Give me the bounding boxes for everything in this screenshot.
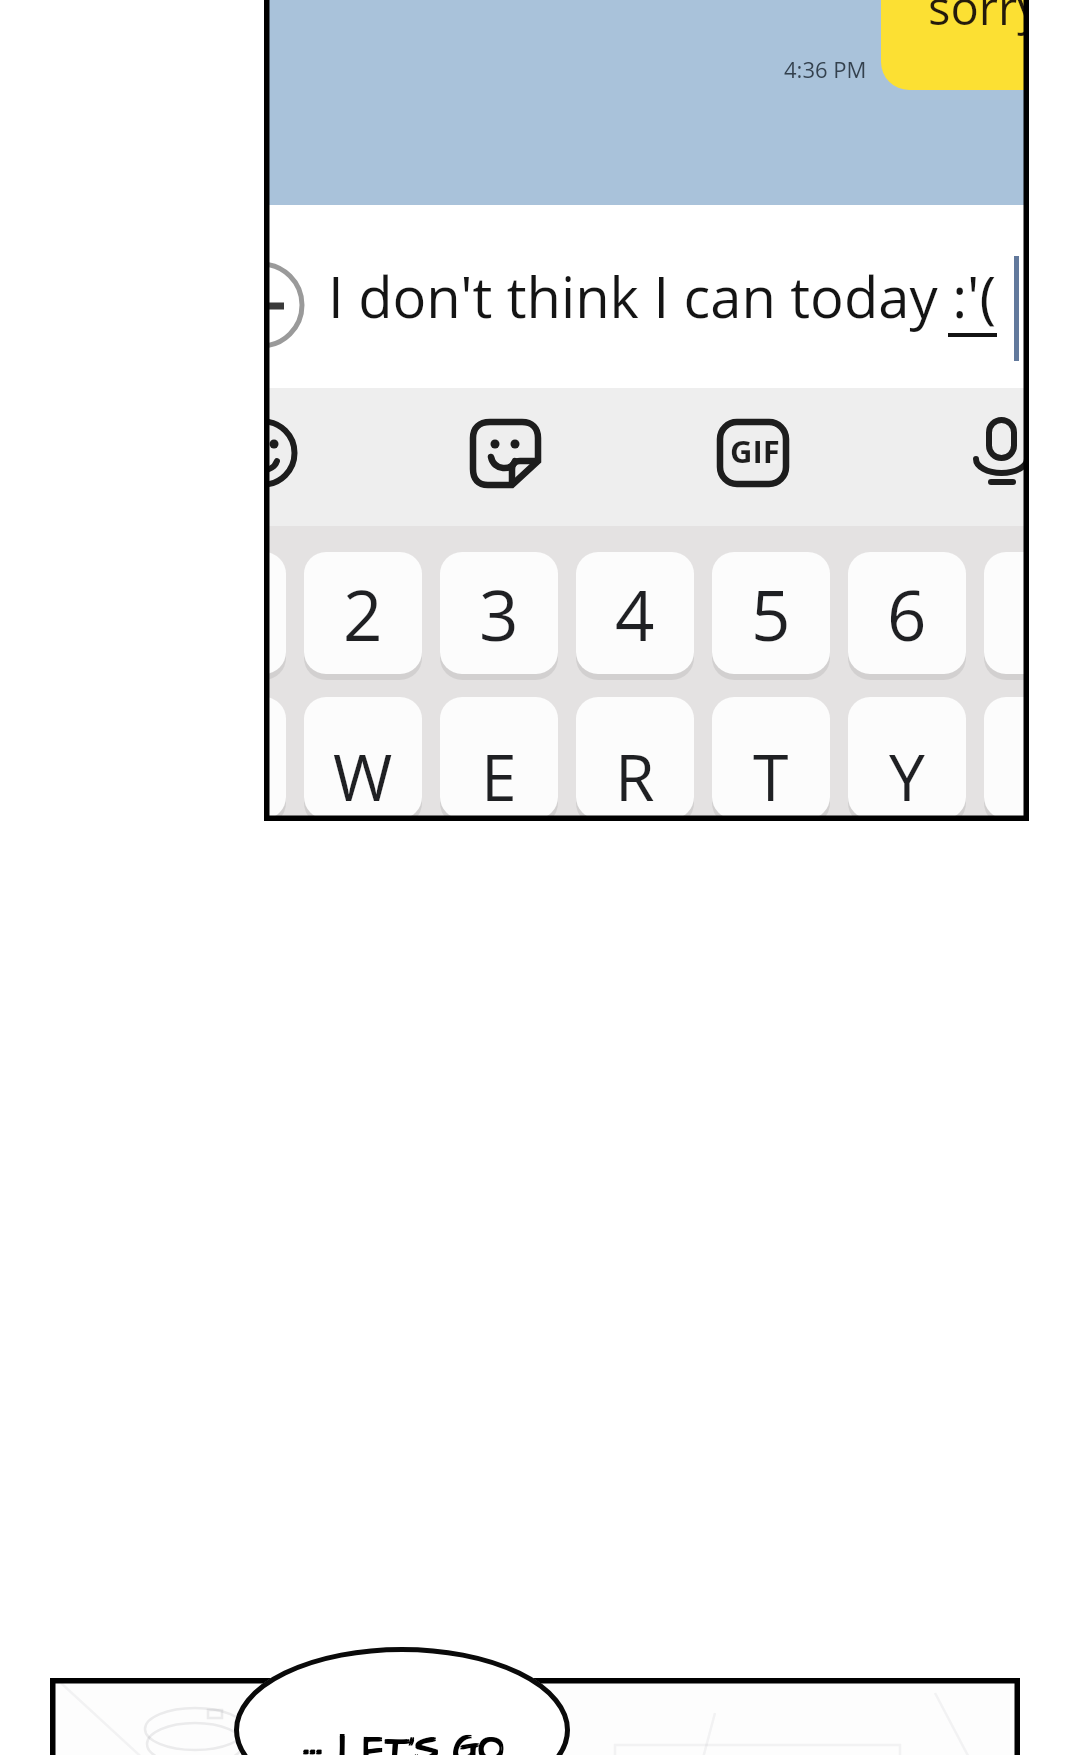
staticText: LET'S GO. bbox=[339, 1726, 510, 1755]
staticText: 4:36 PM bbox=[784, 54, 867, 84]
staticText: LET'S GO. bbox=[337, 1724, 508, 1755]
staticText: R bbox=[615, 733, 655, 816]
staticText: I don't think I can today :'( bbox=[328, 258, 997, 334]
button[interactable]: Stickers bbox=[470, 419, 544, 493]
staticText: ... bbox=[304, 1710, 324, 1755]
staticText: W bbox=[333, 733, 393, 816]
staticText: 6 bbox=[887, 567, 927, 661]
staticText: 4 bbox=[615, 567, 655, 661]
staticText: GIF bbox=[730, 430, 780, 472]
button[interactable]: W bbox=[304, 697, 422, 816]
staticText: LET'S GO. bbox=[339, 1724, 510, 1755]
button[interactable]: 7 bbox=[984, 552, 1024, 674]
staticText: 2 bbox=[343, 567, 383, 661]
button[interactable]: 3 bbox=[440, 552, 558, 674]
button[interactable]: E bbox=[440, 697, 558, 816]
button[interactable]: U bbox=[984, 697, 1024, 816]
button[interactable]: R bbox=[576, 697, 694, 816]
button[interactable]: Voice input bbox=[965, 420, 1024, 494]
button[interactable]: 2 bbox=[304, 552, 422, 674]
button[interactable]: Add attachment bbox=[269, 260, 306, 350]
button[interactable]: 4 bbox=[576, 552, 694, 674]
staticText: 5 bbox=[751, 567, 791, 661]
button[interactable]: Y bbox=[848, 697, 966, 816]
button[interactable]: T bbox=[712, 697, 830, 816]
staticText: LET'S GO. bbox=[337, 1726, 508, 1755]
staticText: ... bbox=[302, 1710, 322, 1755]
button[interactable]: 6 bbox=[848, 552, 966, 674]
button[interactable]: Q bbox=[269, 697, 286, 816]
button[interactable]: 5 bbox=[712, 552, 830, 674]
button[interactable]: Emoji bbox=[269, 416, 303, 490]
staticText: T bbox=[753, 733, 789, 816]
button[interactable]: 1 bbox=[269, 552, 286, 674]
staticText: 3 bbox=[479, 567, 519, 661]
staticText: sorry bbox=[928, 0, 1024, 39]
button[interactable]: GIF keyboard bbox=[717, 419, 791, 493]
staticText: ... bbox=[304, 1708, 324, 1755]
staticText: U bbox=[1020, 733, 1024, 816]
staticText: E bbox=[481, 733, 517, 816]
staticText: Y bbox=[889, 733, 925, 816]
button[interactable]: sorry bbox=[881, 0, 1024, 90]
staticText: ... bbox=[302, 1708, 322, 1755]
